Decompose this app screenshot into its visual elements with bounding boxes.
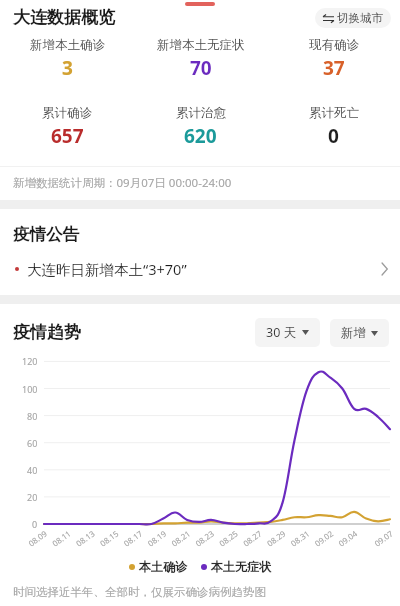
staticText: 累计死亡 <box>309 105 359 121</box>
staticText: 现有确诊 <box>309 37 359 53</box>
staticText: 新增本土确诊 <box>30 37 105 53</box>
staticText: 0 <box>328 123 339 149</box>
staticText: 3 <box>62 55 73 81</box>
staticText: 30 天 <box>266 324 297 341</box>
button[interactable]: 新增本土无症状 <box>134 37 267 81</box>
staticText: 大连数据概览 <box>13 7 115 28</box>
other: Open detail <box>381 263 388 275</box>
staticText: 大连昨日新增本土“3+70” <box>27 259 187 279</box>
staticText: 70 <box>190 55 212 81</box>
staticText: 657 <box>51 123 84 149</box>
staticText: 疫情公告 <box>13 224 79 245</box>
button[interactable]: 现有确诊 <box>267 37 400 81</box>
button[interactable]: 新增 <box>330 319 389 347</box>
staticText: 本土确诊 <box>139 559 187 574</box>
button[interactable]: 累计治愈 <box>134 105 267 149</box>
staticText: 新增本土无症状 <box>157 37 245 53</box>
button[interactable]: 30 天 <box>255 318 320 347</box>
staticText: 累计治愈 <box>176 105 226 121</box>
staticText: 新增数据统计周期：09月07日 00:00-24:00 <box>13 175 232 191</box>
staticText: 本土无症状 <box>211 559 271 574</box>
staticText: 时间选择近半年、全部时，仅展示确诊病例趋势图 <box>13 585 266 599</box>
other: Switch city <box>323 13 334 24</box>
staticText: 疫情趋势 <box>13 322 81 343</box>
staticText: 37 <box>323 55 345 81</box>
staticText: 620 <box>184 123 217 149</box>
button[interactable]: Switch city <box>315 8 391 28</box>
button[interactable]: 累计死亡 <box>267 105 400 149</box>
staticText: 累计确诊 <box>42 105 92 121</box>
button[interactable]: 本土无症状 <box>199 557 273 576</box>
button[interactable]: 新增本土确诊 <box>0 37 134 81</box>
button[interactable]: 本土确诊 <box>127 557 189 576</box>
staticText: 新增 <box>341 325 366 341</box>
staticText: 切换城市 <box>337 11 383 25</box>
button[interactable]: 累计确诊 <box>0 105 134 149</box>
button[interactable]: 大连昨日新增本土“3+70” <box>0 256 400 282</box>
